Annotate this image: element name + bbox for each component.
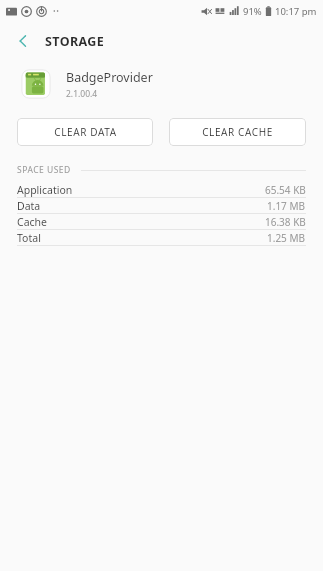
staticText: 91% — [243, 5, 262, 18]
button[interactable]: BadgeProvider — [0, 60, 323, 108]
staticText: Application — [17, 183, 73, 197]
button[interactable]: Total — [0, 230, 323, 245]
button[interactable]: CLEAR CACHE — [169, 118, 306, 146]
button[interactable]: CLEAR DATA — [17, 118, 153, 146]
staticText: Total — [17, 231, 41, 245]
staticText: STORAGE — [45, 33, 105, 50]
button[interactable]: Data — [0, 198, 323, 213]
staticText: 16.38 KB — [265, 215, 306, 229]
button[interactable]: Application — [0, 182, 323, 197]
staticText: 65.54 KB — [265, 183, 306, 197]
staticText: Cache — [17, 215, 47, 229]
staticText: 2.1.00.4 — [66, 88, 98, 100]
staticText: 1.25 MB — [267, 231, 306, 245]
staticText: 1.17 MB — [267, 199, 306, 213]
staticText: CLEAR DATA — [54, 125, 117, 139]
staticText: 10:17 pm — [275, 5, 317, 18]
staticText: BadgeProvider — [66, 69, 153, 86]
button[interactable]: Cache — [0, 214, 323, 229]
staticText: Data — [17, 199, 41, 213]
staticText: SPACE USED — [17, 164, 71, 176]
staticText: CLEAR CACHE — [202, 125, 273, 139]
button[interactable]: Back — [8, 26, 38, 56]
